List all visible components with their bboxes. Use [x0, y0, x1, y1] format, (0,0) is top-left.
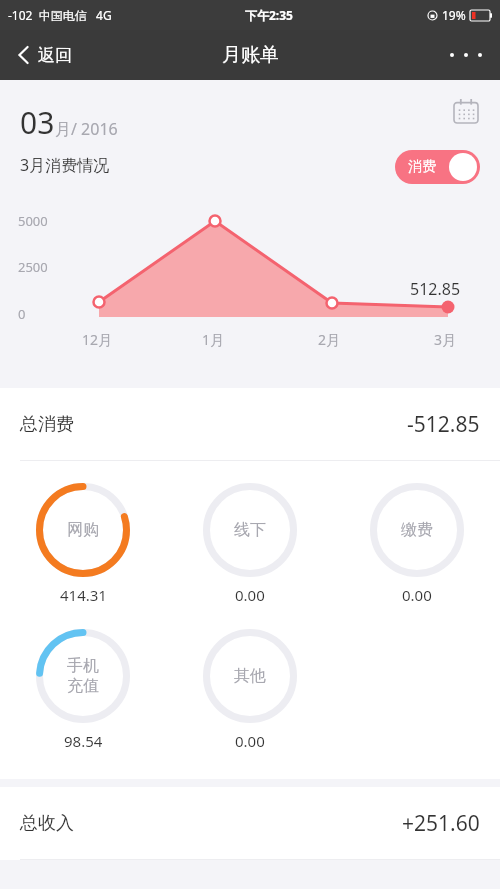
staticText: 消费: [408, 158, 436, 176]
button[interactable]: 线下: [166, 483, 333, 605]
staticText: 98.54: [64, 731, 103, 751]
staticText: 线下: [234, 520, 266, 540]
button[interactable]: More options: [432, 30, 500, 80]
button[interactable]: 总消费: [0, 388, 500, 460]
staticText: 2500: [18, 258, 48, 276]
button[interactable]: 返回: [0, 30, 86, 80]
staticText: 充值: [67, 676, 99, 696]
staticText: 其他: [234, 666, 266, 686]
staticText: -102 中国电信 4G: [8, 7, 112, 23]
staticText: 返回: [38, 45, 72, 66]
staticText: 总收入: [20, 812, 74, 835]
staticText: 3月消费情况: [20, 154, 110, 176]
staticText: 1月: [202, 330, 225, 349]
staticText: 3月: [434, 330, 457, 349]
staticText: 512.85: [410, 278, 461, 300]
staticText: 0: [18, 305, 26, 323]
staticText: 缴费: [401, 520, 433, 540]
staticText: 网购: [67, 520, 99, 540]
staticText: 总消费: [20, 413, 74, 436]
staticText: 414.31: [60, 585, 107, 605]
staticText: 手机: [67, 656, 99, 676]
staticText: 19%: [442, 7, 466, 23]
staticText: 月账单: [222, 43, 279, 67]
button[interactable]: 缴费: [333, 483, 500, 605]
button[interactable]: 其他: [166, 629, 333, 751]
staticText: 0.00: [402, 585, 432, 605]
staticText: 5000: [18, 212, 48, 230]
staticText: 2月: [318, 330, 341, 349]
staticText: / 2016: [71, 118, 118, 140]
staticText: 0.00: [235, 731, 265, 751]
staticText: 0.00: [235, 585, 265, 605]
staticText: 月: [55, 120, 71, 140]
button[interactable]: 总收入: [0, 787, 500, 859]
staticText: 下午2:35: [245, 7, 293, 23]
staticText: 03: [20, 102, 55, 143]
button[interactable]: 手机: [0, 629, 166, 751]
button[interactable]: 网购: [0, 483, 166, 605]
staticText: 12月: [82, 330, 113, 349]
staticText: -512.85: [407, 410, 480, 439]
staticText: +251.60: [402, 809, 480, 838]
button[interactable]: 消费: [395, 150, 480, 184]
button[interactable]: Pick month: [446, 92, 486, 132]
